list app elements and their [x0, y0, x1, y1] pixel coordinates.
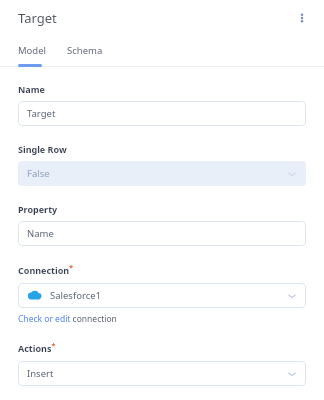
button[interactable]: Salesforce1 [18, 283, 306, 308]
staticText: Name [18, 83, 45, 95]
staticText: Check or edit connection [18, 313, 117, 325]
staticText: Connection* [18, 263, 73, 277]
button[interactable]: More options [290, 6, 314, 30]
staticText: Target [27, 107, 56, 120]
button[interactable]: False [18, 161, 306, 186]
staticText: Actions* [18, 341, 56, 355]
button[interactable]: Model [18, 36, 47, 64]
button[interactable]: Insert [18, 361, 306, 386]
button[interactable]: Check or edit connection [18, 313, 117, 325]
staticText: Single Row [18, 143, 67, 155]
button[interactable]: Name [18, 221, 306, 246]
staticText: False [27, 167, 287, 180]
button[interactable]: Schema [67, 36, 103, 64]
staticText: Property [18, 203, 58, 215]
staticText: Schema [67, 44, 103, 57]
staticText: Model [18, 44, 47, 57]
staticText: Name [27, 227, 54, 240]
staticText: Target [18, 9, 57, 27]
staticText: Salesforce1 [50, 289, 287, 302]
button[interactable]: Target [18, 101, 306, 126]
staticText: Insert [27, 367, 287, 380]
